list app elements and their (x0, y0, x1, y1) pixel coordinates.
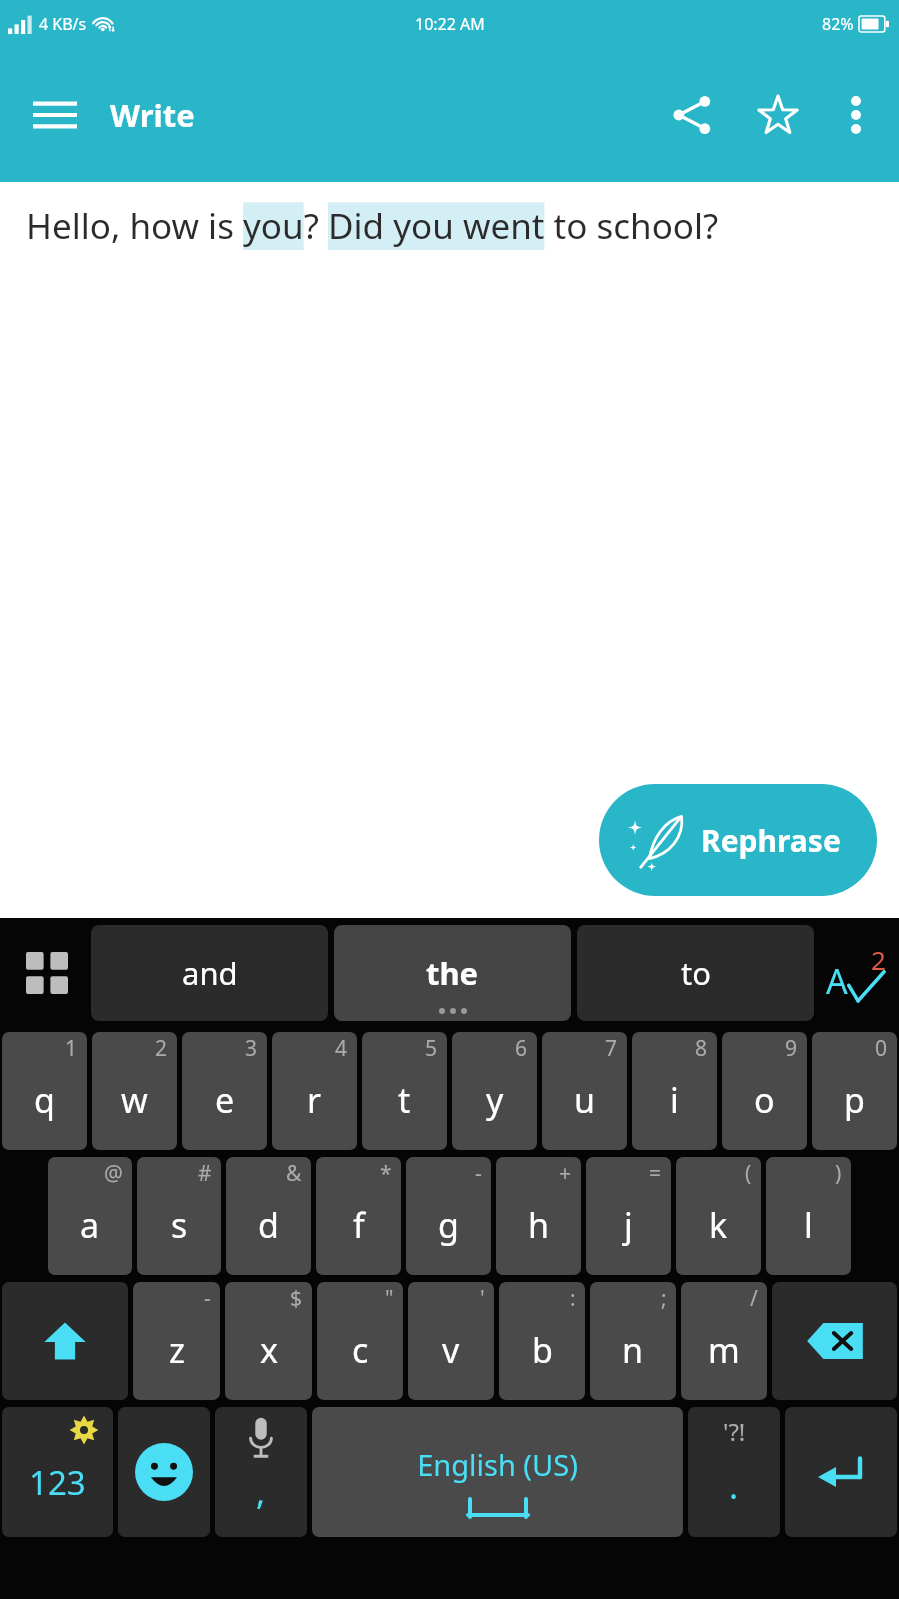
staticText: " (385, 1284, 394, 1313)
staticText: 6 (515, 1034, 528, 1063)
button[interactable]: Numbers and symbols (2, 1407, 113, 1537)
staticText: g (438, 1202, 459, 1248)
staticText: 3 (245, 1034, 258, 1063)
staticText: Rephrase (701, 820, 841, 861)
staticText: A (826, 958, 848, 1004)
staticText: v (442, 1327, 460, 1373)
staticText: - (204, 1284, 211, 1313)
button[interactable]: to (577, 925, 814, 1021)
staticText: u (574, 1077, 596, 1123)
staticText: English (US) (417, 1445, 578, 1484)
staticText: and (182, 952, 238, 994)
button[interactable]: Shift (2, 1282, 128, 1400)
button[interactable]: Rephrase (599, 784, 877, 896)
staticText: 5 (425, 1034, 438, 1063)
staticText: j (624, 1202, 633, 1248)
staticText: i (670, 1077, 679, 1123)
button[interactable]: Keyboard modes (3, 918, 91, 1028)
staticText: 1 (65, 1034, 78, 1063)
staticText: s (171, 1202, 188, 1248)
button[interactable]: 0 (812, 1032, 897, 1150)
button[interactable]: / (681, 1282, 767, 1400)
staticText: k (709, 1202, 728, 1248)
button[interactable]: 1 (2, 1032, 87, 1150)
staticText: x (260, 1327, 278, 1373)
staticText: e (215, 1077, 235, 1123)
staticText: n (622, 1327, 644, 1373)
staticText: @ (104, 1159, 123, 1188)
staticText: 123 (29, 1460, 86, 1505)
staticText: 4 KB/s (39, 13, 87, 35)
staticText: to (681, 952, 711, 994)
button[interactable]: Menu (28, 88, 82, 142)
button[interactable]: 8 (632, 1032, 717, 1150)
button[interactable]: Emoji (118, 1407, 210, 1537)
staticText: & (286, 1159, 302, 1188)
button[interactable]: * (316, 1157, 401, 1275)
staticText: z (169, 1327, 185, 1373)
staticText: p (844, 1077, 865, 1123)
staticText: # (198, 1159, 212, 1188)
staticText: 4 (335, 1034, 348, 1063)
button[interactable]: ; (590, 1282, 676, 1400)
staticText: ( (745, 1159, 752, 1188)
button[interactable]: More options (827, 86, 885, 144)
button[interactable]: = (586, 1157, 671, 1275)
button[interactable]: 9 (722, 1032, 807, 1150)
button[interactable]: $ (225, 1282, 312, 1400)
staticText: the (426, 952, 479, 994)
staticText: $ (290, 1284, 303, 1313)
button[interactable]: Spell check, 2 issues (814, 918, 896, 1028)
staticText: q (34, 1077, 55, 1123)
button[interactable]: - (133, 1282, 220, 1400)
staticText: y (486, 1077, 504, 1123)
button[interactable]: ) (766, 1157, 851, 1275)
button[interactable]: Enter (785, 1407, 897, 1537)
button[interactable]: and (91, 925, 328, 1021)
staticText: Write (110, 94, 195, 136)
staticText: 2 (871, 942, 886, 977)
button[interactable]: : (499, 1282, 585, 1400)
staticText: * (380, 1159, 392, 1188)
button[interactable]: 5 (362, 1032, 447, 1150)
staticText: 2 (155, 1034, 168, 1063)
button[interactable]: Voice input (215, 1407, 307, 1537)
button[interactable]: Favorite (747, 84, 809, 146)
staticText: : (570, 1284, 576, 1313)
staticText: , (256, 1469, 266, 1515)
button[interactable]: 6 (452, 1032, 537, 1150)
button[interactable]: Share (661, 84, 723, 146)
staticText: c (352, 1327, 369, 1373)
staticText: 82% (822, 13, 854, 35)
button[interactable]: 2 (92, 1032, 177, 1150)
staticText: 0 (875, 1034, 888, 1063)
button[interactable]: English (US) (312, 1407, 683, 1537)
button[interactable]: ( (676, 1157, 761, 1275)
staticText: b (532, 1327, 553, 1373)
button[interactable]: the (334, 925, 571, 1021)
staticText: t (398, 1077, 411, 1123)
button[interactable]: Backspace (772, 1282, 897, 1400)
staticText: m (708, 1327, 740, 1373)
button[interactable]: @ (48, 1157, 132, 1275)
staticText: h (528, 1202, 550, 1248)
button[interactable]: - (406, 1157, 491, 1275)
button[interactable]: '?! (688, 1407, 780, 1537)
staticText: 10:22 AM (415, 13, 485, 35)
button[interactable]: ' (408, 1282, 494, 1400)
button[interactable]: & (226, 1157, 311, 1275)
staticText: / (750, 1284, 758, 1313)
staticText: a (80, 1202, 100, 1248)
button[interactable]: " (317, 1282, 403, 1400)
staticText: 9 (785, 1034, 798, 1063)
button[interactable]: # (137, 1157, 221, 1275)
staticText: f (353, 1202, 365, 1248)
staticText: ' (480, 1284, 485, 1313)
staticText: l (804, 1202, 813, 1248)
button[interactable]: + (496, 1157, 581, 1275)
staticText: 8 (695, 1034, 708, 1063)
button[interactable]: 7 (542, 1032, 627, 1150)
staticText: ; (661, 1284, 667, 1313)
button[interactable]: 3 (182, 1032, 267, 1150)
button[interactable]: 4 (272, 1032, 357, 1150)
